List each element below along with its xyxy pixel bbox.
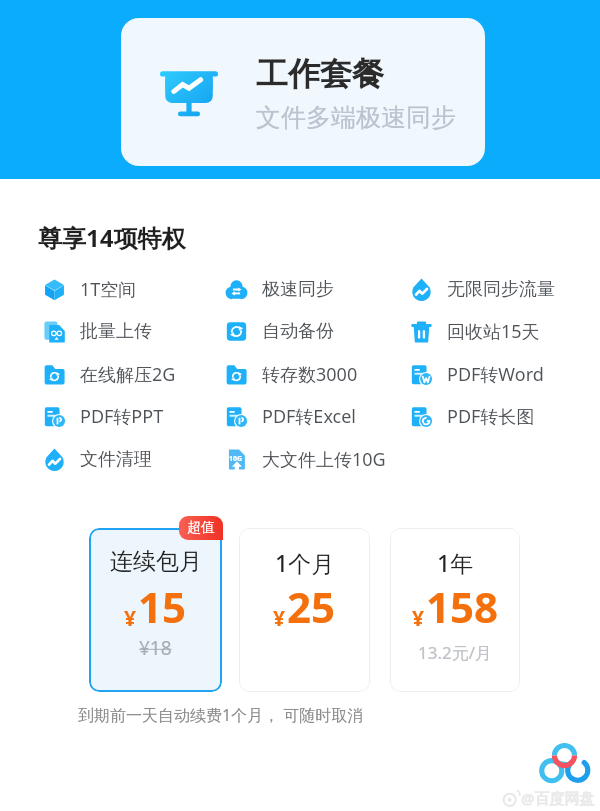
staticText: 尊享14项特权 (38, 221, 186, 254)
button[interactable]: 回收站15天 (411, 316, 540, 346)
staticText: 在线解压2G (80, 362, 176, 387)
staticText: ¥ (124, 604, 137, 633)
staticText: 回收站15天 (447, 319, 540, 344)
staticText: PDF转PPT (80, 404, 164, 429)
button[interactable]: PDF转Word (411, 359, 544, 389)
staticText: 1年 (437, 547, 474, 578)
button[interactable]: 10G (226, 444, 386, 474)
staticText: 连续包月 (110, 547, 202, 576)
staticText: 15 (138, 578, 187, 635)
staticText: 文件多端极速同步 (256, 102, 456, 133)
button[interactable]: PDF转PPT (44, 401, 164, 431)
staticText: @百度网盘 (521, 788, 595, 808)
button[interactable]: 超值 (179, 516, 223, 540)
staticText: PDF转长图 (447, 404, 535, 429)
staticText: 工作套餐 (256, 54, 384, 94)
button[interactable]: 转存数3000 (226, 359, 358, 389)
staticText: 超值 (187, 519, 215, 537)
button[interactable]: PDF转长图 (411, 401, 535, 431)
button[interactable]: 1年 (390, 528, 520, 692)
staticText: 大文件上传10G (262, 447, 386, 472)
staticText: 10G (229, 454, 243, 464)
staticText: 1个月 (275, 547, 335, 578)
staticText: PDF转Word (447, 362, 544, 387)
button[interactable]: 无限同步流量 (411, 274, 555, 304)
staticText: 批量上传 (80, 320, 152, 343)
button[interactable]: 工作套餐 (121, 18, 485, 166)
button[interactable]: PDF转Excel (226, 401, 356, 431)
staticText: 13.2元/月 (418, 641, 493, 664)
button[interactable]: 自动备份 (226, 316, 334, 346)
staticText: ¥18 (139, 635, 172, 661)
staticText: 极速同步 (262, 278, 334, 301)
button[interactable]: 1T空间 (44, 274, 137, 304)
staticText: ¥ (273, 604, 286, 633)
staticText: PDF转Excel (262, 404, 356, 429)
staticText: 到期前一天自动续费1个月， 可随时取消 (78, 704, 364, 726)
staticText: 1T空间 (80, 277, 137, 302)
staticText: 158 (426, 578, 499, 635)
staticText: 转存数3000 (262, 362, 358, 387)
staticText: 无限同步流量 (447, 278, 555, 301)
staticText: ¥ (412, 604, 425, 633)
button[interactable]: 连续包月 (89, 528, 222, 692)
staticText: 文件清理 (80, 448, 152, 471)
other: Baidu Netdisk logo (540, 742, 589, 783)
button[interactable]: 批量上传 (44, 316, 152, 346)
staticText: 自动备份 (262, 320, 334, 343)
staticText: 25 (287, 578, 336, 635)
button[interactable]: 1个月 (239, 528, 370, 692)
button[interactable]: 极速同步 (226, 274, 334, 304)
button[interactable]: 在线解压2G (44, 359, 176, 389)
button[interactable]: 文件清理 (44, 444, 152, 474)
